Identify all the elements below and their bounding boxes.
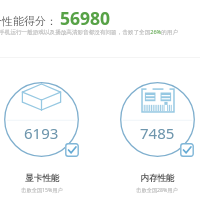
staticText: 显卡性能 [25,173,60,184]
staticText: 内存性能 [140,173,175,184]
staticText: 56980 [60,6,111,30]
staticText: 您的手机运行一般游戏以及播放高清影音都没有问题，击败了全国26%的用户 [0,28,179,36]
button[interactable]: 显卡性能 [4,82,79,157]
staticText: 击败全国28%用户 [136,186,178,193]
button[interactable]: Completed [180,143,194,157]
button[interactable]: 内存性能 [120,82,195,157]
button[interactable]: Completed [65,143,79,157]
staticText: 击败全国15%用户 [21,186,63,193]
staticText: 7485 [140,123,175,143]
staticText: 6193 [24,123,59,143]
staticText: 综合性能得分： [0,14,57,28]
